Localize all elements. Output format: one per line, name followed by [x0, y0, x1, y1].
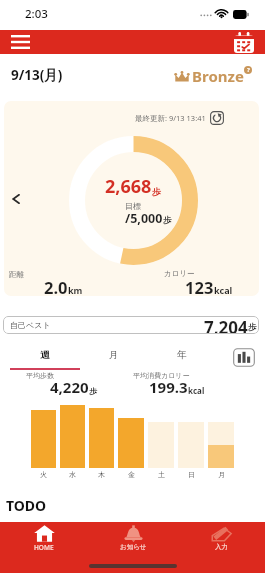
staticText: 最終更新: 9/13 13:41	[135, 113, 206, 123]
staticText: HOME	[34, 543, 54, 552]
staticText: kcal	[188, 385, 205, 396]
staticText: 年	[177, 349, 187, 361]
staticText: 歩	[163, 215, 172, 226]
staticText: TODO	[6, 496, 47, 515]
staticText: 2:03	[25, 6, 48, 22]
staticText: 月	[218, 470, 225, 479]
staticText: 歩	[152, 186, 161, 197]
button[interactable]: 週	[11, 342, 79, 368]
button[interactable]: お知らせ	[106, 522, 160, 556]
staticText: 7,204	[204, 316, 248, 334]
staticText: 土	[158, 470, 165, 479]
staticText: 月	[109, 349, 119, 361]
staticText: 2.0	[44, 276, 68, 296]
staticText: 歩	[248, 322, 257, 333]
button[interactable]: HOME	[17, 522, 71, 556]
button[interactable]: Calendar	[234, 32, 254, 53]
staticText: 金	[128, 470, 135, 479]
staticText: 歩	[89, 386, 97, 396]
button[interactable]: Previous day	[9, 192, 23, 206]
staticText: 4,220	[50, 377, 89, 397]
staticText: ?	[247, 66, 250, 74]
staticText: Bronze	[192, 66, 244, 86]
staticText: 199.3	[149, 377, 188, 397]
staticText: 週	[40, 349, 50, 361]
staticText: km	[68, 284, 83, 296]
staticText: 木	[98, 470, 105, 479]
button[interactable]: Bronze	[175, 66, 252, 86]
staticText: カロリー	[164, 269, 195, 278]
staticText: 平均消費カロリー	[133, 371, 190, 380]
staticText: 日	[188, 470, 195, 479]
staticText: kcal	[214, 284, 233, 296]
button[interactable]: 月	[80, 342, 148, 368]
button[interactable]: 年	[148, 342, 216, 368]
button[interactable]: 自己ベスト	[3, 316, 259, 334]
button[interactable]: Refresh	[210, 111, 224, 125]
staticText: 入力	[215, 543, 228, 551]
staticText: 9/13(月)	[11, 66, 63, 84]
staticText: 水	[69, 470, 76, 479]
staticText: 目標	[125, 201, 141, 211]
button[interactable]: Menu	[11, 35, 30, 49]
staticText: 平均歩数	[26, 371, 54, 380]
button[interactable]: 入力	[194, 522, 248, 556]
staticText: /5,000	[125, 210, 163, 227]
staticText: 自己ベスト	[10, 320, 51, 330]
staticText: お知らせ	[120, 543, 147, 551]
staticText: 距離	[9, 270, 24, 279]
button[interactable]: Chart type	[233, 348, 255, 367]
staticText: 123	[185, 276, 214, 296]
staticText: 2,668	[105, 174, 152, 199]
staticText: 火	[40, 470, 47, 479]
